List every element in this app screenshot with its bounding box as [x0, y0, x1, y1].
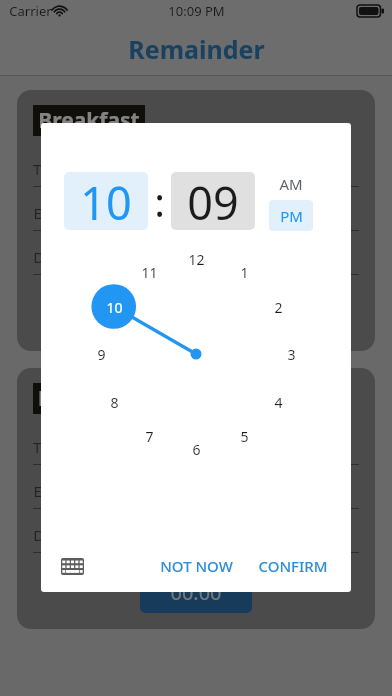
- staticText: 10: [80, 172, 132, 230]
- staticText: 2: [274, 298, 283, 317]
- staticText: 11: [141, 263, 158, 282]
- button[interactable]: 6: [182, 438, 210, 460]
- staticText: 09: [187, 172, 239, 230]
- button[interactable]: 4: [264, 391, 292, 413]
- button[interactable]: 10: [64, 172, 148, 230]
- staticText: 8: [110, 393, 119, 412]
- staticText: 10: [106, 298, 123, 317]
- staticText: Remainder: [128, 32, 265, 66]
- button[interactable]: 7: [135, 425, 163, 447]
- staticText: 1: [240, 263, 249, 282]
- staticText: 12: [188, 250, 205, 269]
- staticText: 4: [274, 393, 283, 412]
- button[interactable]: 11: [135, 261, 163, 283]
- staticText: PM: [280, 206, 303, 226]
- staticText: 5: [240, 427, 249, 446]
- staticText: 6: [192, 440, 201, 459]
- staticText: 9: [97, 345, 106, 364]
- button[interactable]: 10: [100, 296, 128, 318]
- staticText: Title: [33, 159, 63, 179]
- staticText: 00:00: [170, 579, 222, 606]
- button[interactable]: 8: [100, 391, 128, 413]
- staticText: Description: [33, 525, 114, 545]
- staticText: CONFIRM: [258, 556, 328, 576]
- staticText: Dinner: [38, 384, 109, 413]
- button[interactable]: 00:00: [140, 294, 252, 335]
- button[interactable]: 9: [87, 343, 115, 365]
- staticText: Title: [33, 437, 63, 457]
- staticText: 7: [145, 427, 154, 446]
- button[interactable]: Switch to keyboard input: [56, 550, 88, 582]
- button[interactable]: 00:00: [140, 572, 252, 613]
- button[interactable]: AM: [269, 171, 313, 197]
- button[interactable]: 09: [171, 172, 255, 230]
- staticText: Breakfast: [38, 106, 140, 135]
- button[interactable]: 2: [264, 296, 292, 318]
- staticText: Carrier: [9, 2, 52, 20]
- staticText: Description: [33, 247, 114, 267]
- button[interactable]: 1: [230, 261, 258, 283]
- button[interactable]: NOT NOW: [152, 549, 241, 583]
- staticText: 10:09 PM: [168, 2, 225, 20]
- staticText: Event: [33, 203, 73, 223]
- button[interactable]: 5: [230, 425, 258, 447]
- staticText: Event: [33, 481, 73, 501]
- button[interactable]: CONFIRM: [250, 549, 336, 583]
- staticText: AM: [279, 174, 303, 194]
- staticText: NOT NOW: [160, 556, 233, 576]
- staticText: :: [154, 174, 165, 228]
- staticText: 3: [287, 345, 296, 364]
- button[interactable]: PM: [269, 200, 313, 231]
- button[interactable]: 3: [277, 343, 305, 365]
- button[interactable]: 12: [182, 248, 210, 270]
